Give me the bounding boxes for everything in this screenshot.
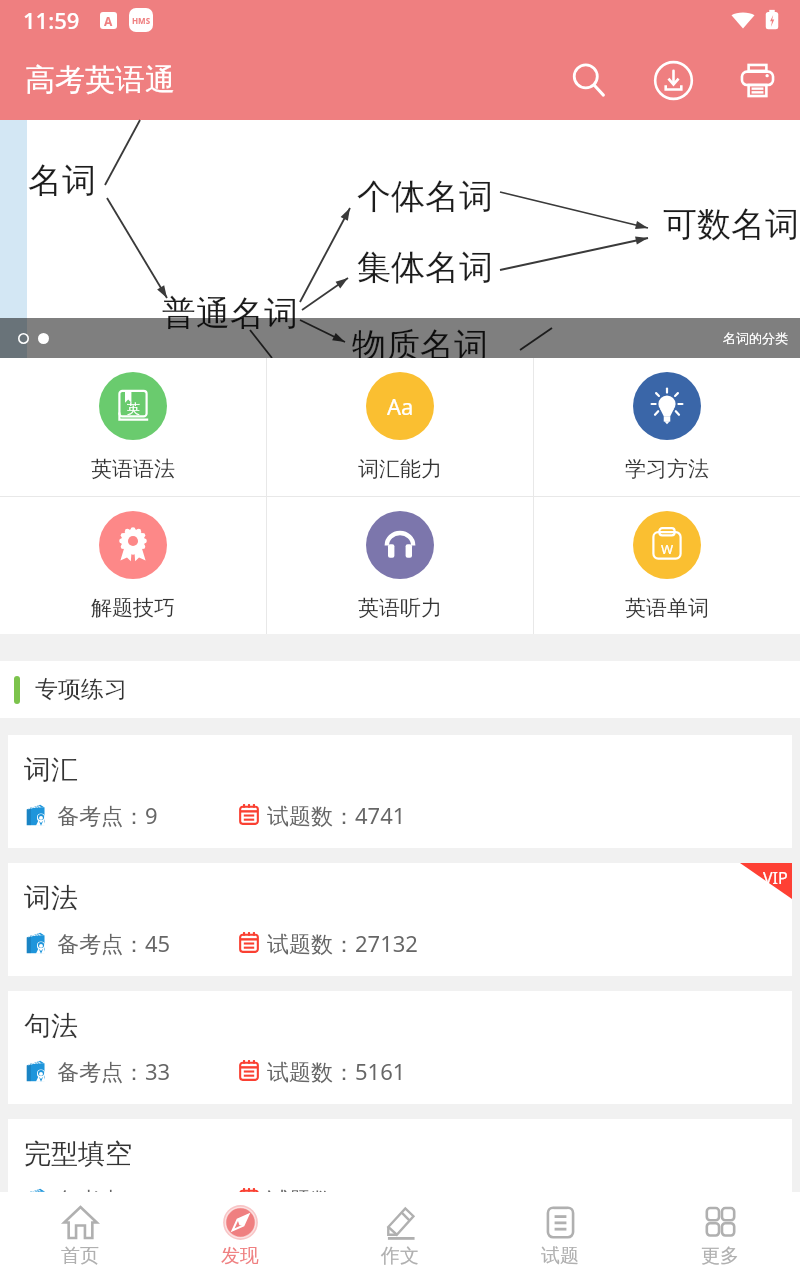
staticText: 名词的分类 <box>723 330 788 346</box>
button[interactable]: 更多 <box>640 1192 800 1280</box>
button[interactable]: 解题技巧 <box>0 497 266 634</box>
staticText: W <box>661 540 674 558</box>
staticText: 句法 <box>24 1009 78 1043</box>
staticText: 名词 <box>28 159 96 202</box>
staticText: 备考点：9 <box>57 800 158 830</box>
staticText: 高考英语通 <box>25 61 175 99</box>
button[interactable]: 词法 <box>8 863 792 976</box>
button[interactable]: 首页 <box>0 1192 160 1280</box>
button[interactable]: Print <box>715 46 799 114</box>
staticText: 可数名词 <box>663 203 799 246</box>
button[interactable]: W <box>534 497 800 634</box>
staticText: 解题技巧 <box>91 595 175 621</box>
staticText: 作文 <box>381 1244 419 1268</box>
staticText: 11:59 <box>23 5 80 35</box>
staticText: 学习方法 <box>625 456 709 482</box>
staticText: VIP <box>763 867 788 889</box>
staticText: A <box>104 13 113 29</box>
staticText: 集体名词 <box>357 246 493 289</box>
button[interactable]: 试题 <box>480 1192 640 1280</box>
staticText: 英语单词 <box>625 595 709 621</box>
staticText: 备考点：11 <box>57 1184 171 1214</box>
staticText: 更多 <box>701 1244 739 1268</box>
staticText: 英语听力 <box>358 595 442 621</box>
button[interactable]: 完型填空 <box>8 1119 792 1232</box>
button[interactable]: 作文 <box>320 1192 480 1280</box>
staticText: 试题数：1031 <box>267 1184 406 1214</box>
staticText: Aa <box>387 391 414 421</box>
button[interactable]: 学习方法 <box>534 358 800 496</box>
button[interactable]: Aa <box>267 358 533 496</box>
staticText: 普通名词 <box>162 292 298 335</box>
staticText: 试题数：5161 <box>267 1056 406 1086</box>
staticText: 试题数：27132 <box>267 928 418 958</box>
staticText: 英 <box>127 400 140 416</box>
button[interactable]: 句法 <box>8 991 792 1104</box>
staticText: 备考点：33 <box>57 1056 171 1086</box>
button[interactable]: Download <box>631 46 715 114</box>
staticText: 试题数：4741 <box>267 800 406 830</box>
staticText: 词汇能力 <box>358 456 442 482</box>
staticText: 发现 <box>221 1244 259 1268</box>
button[interactable]: 英 <box>0 358 266 496</box>
button[interactable]: 词汇 <box>8 735 792 848</box>
staticText: 词法 <box>24 881 78 915</box>
staticText: 词汇 <box>24 753 78 787</box>
staticText: 英语语法 <box>91 456 175 482</box>
staticText: 备考点：45 <box>57 928 171 958</box>
staticText: HMS <box>132 15 151 26</box>
button[interactable]: Search <box>547 46 631 114</box>
button[interactable]: 英语听力 <box>267 497 533 634</box>
staticText: 首页 <box>61 1244 99 1268</box>
staticText: 试题 <box>541 1244 579 1268</box>
staticText: 物质名词 <box>352 324 488 367</box>
staticText: 完型填空 <box>24 1137 132 1171</box>
staticText: 个体名词 <box>357 175 493 218</box>
staticText: 专项练习 <box>35 675 127 704</box>
button[interactable]: 发现 <box>160 1192 320 1280</box>
